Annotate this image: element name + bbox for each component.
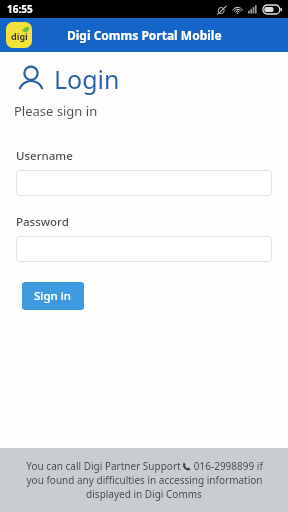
staticText: digi [11, 30, 28, 42]
staticText: Login [54, 62, 120, 96]
button[interactable]: Text input [16, 236, 272, 262]
staticText: Digi Comms Portal Mobile [67, 27, 222, 43]
staticText: Please sign in [14, 102, 98, 120]
staticText: You can call Digi Partner Support [25, 459, 182, 473]
staticText: displayed in Digi Comms [86, 487, 202, 501]
staticText: Sign in [34, 288, 72, 304]
button[interactable]: Sign in [22, 282, 84, 310]
staticText: Password [16, 214, 69, 230]
staticText: you found any difficulties in accessing … [26, 473, 263, 487]
staticText: 16:55 [7, 2, 33, 16]
button[interactable]: Text input [16, 170, 272, 196]
staticText: 016-2998899 if [191, 459, 263, 473]
button[interactable]: Digi logo [6, 22, 32, 48]
staticText: Username [16, 148, 73, 164]
